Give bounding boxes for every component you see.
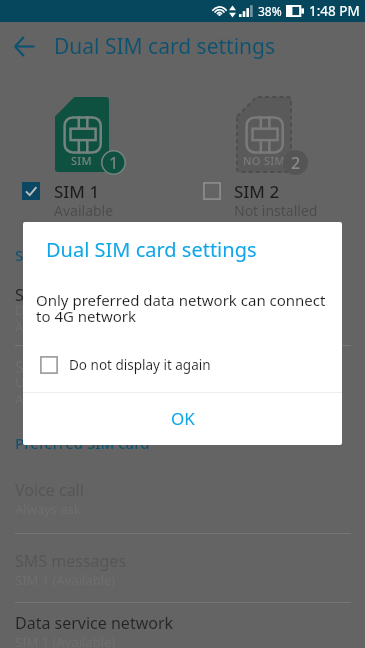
button[interactable]: Data service network xyxy=(0,612,365,648)
staticText: SIM card settings xyxy=(15,245,139,265)
staticText: Dual SIM card settings xyxy=(46,236,257,263)
staticText: SIM 1 xyxy=(54,180,100,203)
staticText: SIM 2 card xyxy=(15,356,94,378)
staticText: 2 xyxy=(291,152,301,174)
button[interactable]: SIM 2 xyxy=(203,181,318,221)
staticText: Only preferred data network can connect … xyxy=(36,290,331,326)
staticText: Available xyxy=(54,201,114,220)
button[interactable]: SIM 1 xyxy=(22,181,114,221)
staticText: Unknown xyxy=(15,373,74,391)
staticText: SIM xyxy=(71,153,92,168)
button[interactable]: SIM 2 card xyxy=(0,356,365,409)
staticText: Dual SIM card settings xyxy=(54,32,276,61)
staticText: SIM 1 card xyxy=(15,284,94,306)
staticText: 1 xyxy=(109,152,119,174)
staticText: Do not display it again xyxy=(69,356,211,374)
staticText: An error occurred xyxy=(15,390,124,408)
button[interactable]: Do not display it again xyxy=(23,350,342,380)
button[interactable]: SIM 1 card xyxy=(0,284,365,337)
staticText: NO SIM xyxy=(243,153,285,168)
staticText: Preferred SIM card xyxy=(15,433,150,453)
staticText: 1:48 PM xyxy=(309,2,360,20)
staticText: Display name, phone number xyxy=(15,301,196,319)
button[interactable]: Back xyxy=(4,26,44,66)
button[interactable]: OK xyxy=(23,392,342,444)
staticText: Not installed xyxy=(234,201,318,220)
staticText: Available xyxy=(15,318,70,336)
staticText: SIM 2 xyxy=(234,180,280,203)
staticText: 38% xyxy=(258,3,282,19)
staticText: SMS messages xyxy=(15,550,127,572)
staticText: Data service network xyxy=(15,612,174,634)
staticText: Voice call xyxy=(15,479,84,501)
staticText: OK xyxy=(171,407,195,430)
